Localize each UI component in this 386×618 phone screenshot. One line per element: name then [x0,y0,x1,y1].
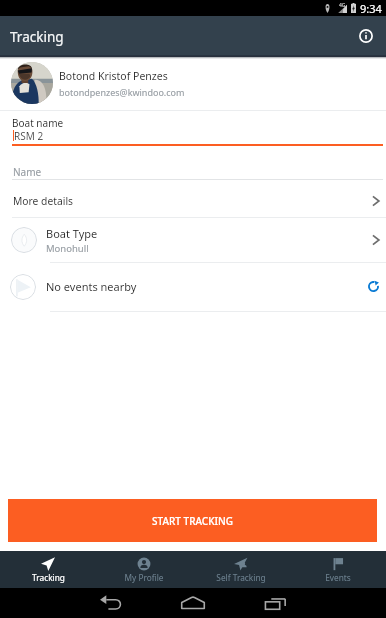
button[interactable]: Home [172,590,214,615]
button[interactable]: Recent apps [255,591,297,615]
staticText: My Profile [124,572,164,583]
staticText: Name [13,165,42,179]
button[interactable]: More details [0,185,386,216]
staticText: Events [325,572,351,583]
button[interactable]: Self Tracking [192,551,289,588]
button[interactable]: No events nearby [0,263,386,310]
staticText: Monohull [46,242,89,255]
button[interactable]: Info [353,23,379,49]
button[interactable]: Botond Kristof Penzes [0,56,386,110]
staticText: 9:34 [360,1,382,16]
button[interactable]: Back [90,591,132,615]
button[interactable]: My Profile [96,551,192,588]
button[interactable]: START TRACKING [8,499,377,542]
staticText: 4G [339,2,346,9]
staticText: More details [13,194,73,208]
staticText: START TRACKING [152,514,234,528]
button[interactable]: Tracking [0,551,96,588]
staticText: botondpenzes@kwindoo.com [59,86,185,98]
button[interactable]: Boat Type [0,218,386,262]
staticText: RSM 2 [14,129,44,143]
button[interactable]: Events [289,551,386,588]
button[interactable]: Refresh [361,275,385,299]
staticText: Botond Kristof Penzes [59,69,168,83]
staticText: Self Tracking [216,572,266,583]
staticText: No events nearby [46,279,137,294]
staticText: Tracking [10,28,64,46]
staticText: Tracking [32,572,65,583]
staticText: Boat name [12,116,64,130]
staticText: Boat Type [46,226,98,241]
